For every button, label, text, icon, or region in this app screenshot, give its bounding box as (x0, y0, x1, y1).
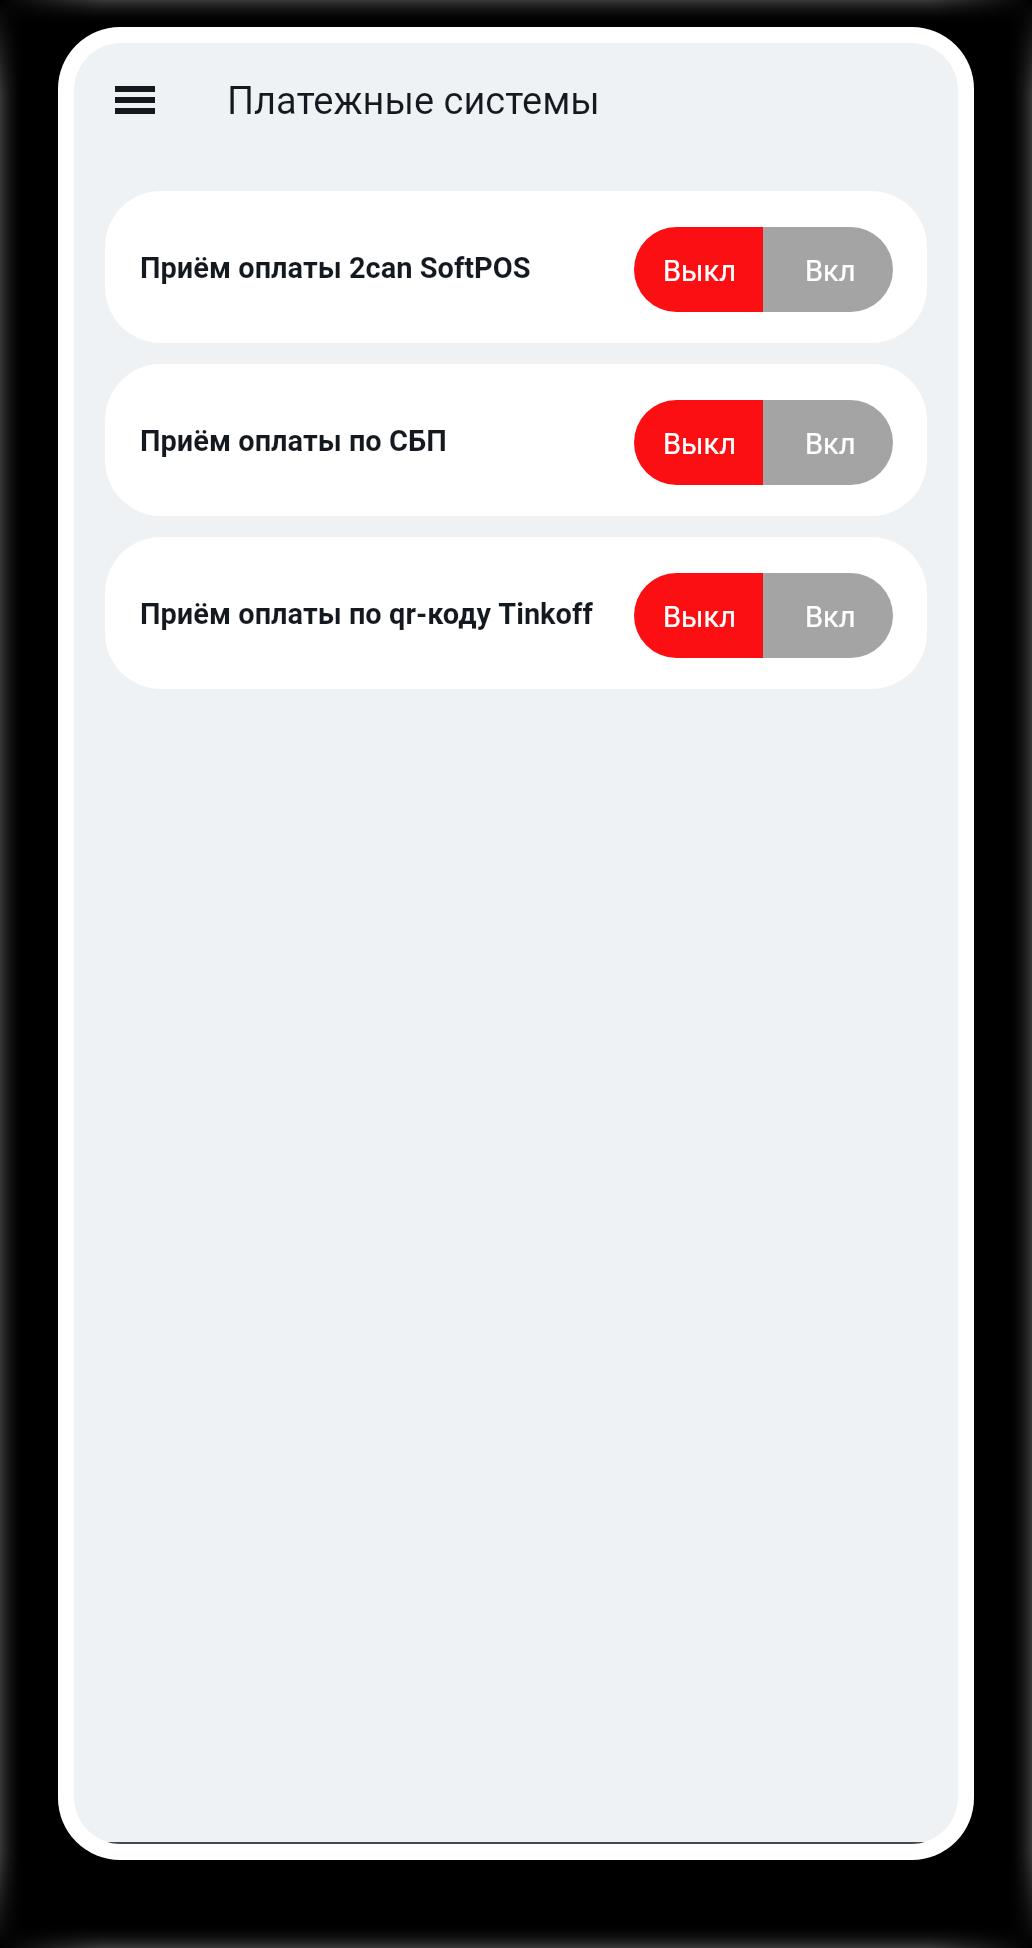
button[interactable]: Вкл (763, 227, 893, 312)
button[interactable]: Приём оплаты по СБП (105, 364, 927, 516)
button[interactable]: Выкл (634, 227, 763, 312)
button[interactable]: Вкл (763, 573, 893, 658)
staticText: Приём оплаты по СБП (140, 424, 447, 458)
staticText: Платежные системы (227, 79, 600, 124)
staticText: Приём оплаты по qr-коду Tinkoff (140, 597, 593, 631)
staticText: Выкл (663, 600, 737, 634)
button[interactable]: Вкл (763, 400, 893, 485)
staticText: Вкл (805, 600, 856, 634)
staticText: Выкл (663, 254, 737, 288)
staticText: Выкл (663, 427, 737, 461)
button[interactable]: Open navigation menu (107, 78, 163, 122)
button[interactable]: Выкл (634, 400, 763, 485)
button[interactable]: Выкл (634, 573, 763, 658)
staticText: Приём оплаты 2can SoftPOS (140, 251, 531, 285)
staticText: Вкл (805, 427, 856, 461)
staticText: Вкл (805, 254, 856, 288)
button[interactable]: Приём оплаты по qr-коду Tinkoff (105, 537, 927, 689)
button[interactable]: Приём оплаты 2can SoftPOS (105, 191, 927, 343)
